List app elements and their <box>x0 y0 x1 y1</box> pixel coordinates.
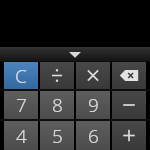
button[interactable]: 4 <box>4 121 38 150</box>
button[interactable]: 7 <box>4 91 38 119</box>
staticText: 9 <box>88 92 99 118</box>
button[interactable]: Plus <box>112 121 146 150</box>
button[interactable]: 5 <box>40 121 74 150</box>
staticText: 7 <box>16 92 27 118</box>
button[interactable]: Minus <box>112 91 146 119</box>
button[interactable]: 9 <box>76 91 110 119</box>
button[interactable]: 6 <box>76 121 110 150</box>
staticText: 5 <box>52 123 63 149</box>
button[interactable]: Multiply <box>76 62 110 89</box>
staticText: C <box>15 63 27 89</box>
button[interactable]: Divide <box>40 62 74 89</box>
staticText: 6 <box>88 123 99 149</box>
button[interactable]: Backspace <box>112 62 146 89</box>
button[interactable]: 8 <box>40 91 74 119</box>
staticText: 8 <box>52 92 63 118</box>
staticText: 4 <box>16 123 27 149</box>
button[interactable]: Collapse keypad <box>0 47 150 61</box>
button[interactable]: C <box>4 62 38 89</box>
